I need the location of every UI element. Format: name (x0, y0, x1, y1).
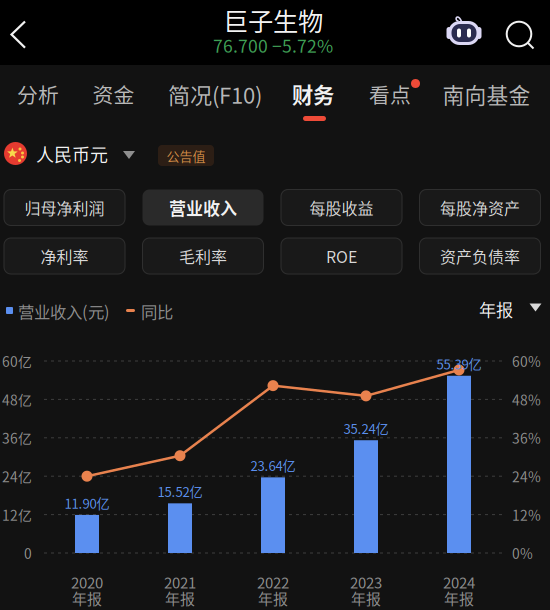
staticText: 48% (512, 389, 541, 409)
button[interactable]: 资金 (77, 65, 149, 125)
button[interactable]: 年报 (479, 290, 550, 332)
staticText: 归母净利润 (24, 196, 104, 219)
staticText: 12亿 (2, 505, 32, 525)
staticText: 2021 (164, 571, 196, 593)
staticText: 23.64亿 (250, 456, 295, 475)
staticText: 资金 (92, 79, 134, 109)
staticText: 营业收入 (169, 195, 237, 220)
button[interactable]: 每股净资产 (419, 189, 540, 225)
staticText: 60% (512, 351, 541, 371)
staticText: 净利率 (40, 244, 88, 268)
button[interactable]: 资产负债率 (419, 238, 540, 274)
button[interactable]: Search (494, 6, 542, 58)
button[interactable]: 分析 (2, 65, 74, 125)
staticText: 0 (24, 543, 32, 563)
button[interactable]: 每股收益 (281, 189, 402, 225)
staticText: 48亿 (2, 389, 32, 409)
button[interactable]: 归母净利润 (4, 189, 125, 225)
button[interactable]: 营业收入 (142, 189, 263, 225)
staticText: 年报 (72, 587, 102, 609)
staticText: 24% (512, 466, 541, 486)
button[interactable]: ROE (281, 238, 402, 274)
staticText: 36亿 (2, 428, 32, 448)
button[interactable]: 净利率 (4, 238, 125, 274)
staticText: 营业收入(元) (18, 299, 110, 323)
staticText: 分析 (17, 79, 59, 109)
staticText: 年报 (479, 296, 513, 321)
staticText: 年报 (444, 587, 474, 609)
staticText: 2023 (350, 571, 382, 593)
staticText: 2024 (443, 571, 475, 593)
button[interactable]: Back (0, 2, 46, 60)
button[interactable]: AI assistant (440, 6, 488, 58)
staticText: 财务 (292, 79, 334, 109)
staticText: 2020 (71, 571, 103, 593)
staticText: ROE (326, 244, 357, 268)
staticText: 60亿 (2, 351, 32, 371)
staticText: 12% (512, 505, 541, 525)
staticText: 24亿 (2, 466, 32, 486)
button[interactable]: 毛利率 (142, 238, 263, 274)
staticText: 公告值 (166, 146, 205, 165)
staticText: 年报 (351, 587, 381, 609)
staticText: 巨子生物 (223, 2, 323, 38)
button[interactable]: 南向基金 (434, 65, 538, 125)
staticText: 每股收益 (309, 196, 373, 219)
staticText: 年报 (165, 587, 195, 609)
staticText: 15.52亿 (157, 482, 202, 501)
staticText: 每股净资产 (440, 196, 520, 219)
button[interactable]: 简况(F10) (157, 65, 273, 125)
staticText: 0% (512, 543, 533, 563)
button[interactable]: 人民币元 (0, 130, 142, 174)
staticText: 36% (512, 428, 541, 448)
staticText: 2022 (257, 571, 289, 593)
staticText: 南向基金 (442, 78, 530, 110)
staticText: 简况(F10) (168, 78, 262, 110)
staticText: 11.90亿 (64, 493, 109, 512)
button[interactable]: 看点 (354, 65, 426, 125)
staticText: 人民币元 (36, 141, 108, 167)
button[interactable]: 财务 (277, 65, 349, 125)
staticText: 同比 (141, 299, 173, 323)
staticText: 资产负债率 (440, 244, 520, 268)
staticText: 毛利率 (179, 244, 227, 268)
staticText: 35.24亿 (343, 419, 388, 438)
staticText: 55.39亿 (436, 354, 481, 373)
staticText: 76.700 −5.72% (213, 32, 333, 58)
staticText: 看点 (369, 79, 411, 109)
staticText: 年报 (258, 587, 288, 609)
